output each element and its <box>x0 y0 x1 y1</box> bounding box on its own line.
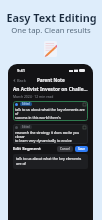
button[interactable]: Edited <box>13 124 88 144</box>
staticText: Save <box>78 147 85 151</box>
staticText: One tap. Clean results <box>11 25 91 35</box>
staticText: research the strategy it does excite you… <box>15 130 86 143</box>
staticText: Easy Text Editing <box>6 10 97 25</box>
staticText: talk to us about what the key elements a… <box>15 107 86 120</box>
staticText: Edited <box>22 102 30 106</box>
staticText: 9:41 <box>17 68 25 73</box>
button[interactable]: Edited <box>13 101 88 121</box>
staticText: Parent Note <box>37 77 65 83</box>
button[interactable]: talk to us about what the key elements a… <box>13 154 88 169</box>
button[interactable]: Cancel <box>57 146 73 152</box>
staticText: Edit Segment <box>13 146 41 152</box>
button[interactable]: Back <box>12 77 27 84</box>
staticText: Cancel <box>60 147 70 151</box>
other: More <box>83 126 86 129</box>
staticText: March 2024 · 12 min read <box>13 94 54 99</box>
staticText: An Activist Investor on Challe... <box>13 86 88 93</box>
staticText: Edited <box>22 125 30 129</box>
staticText: Back <box>17 78 26 83</box>
staticText: talk to us about what the key elements a… <box>16 156 85 167</box>
other: More <box>83 103 86 106</box>
button[interactable]: Save <box>75 146 88 152</box>
